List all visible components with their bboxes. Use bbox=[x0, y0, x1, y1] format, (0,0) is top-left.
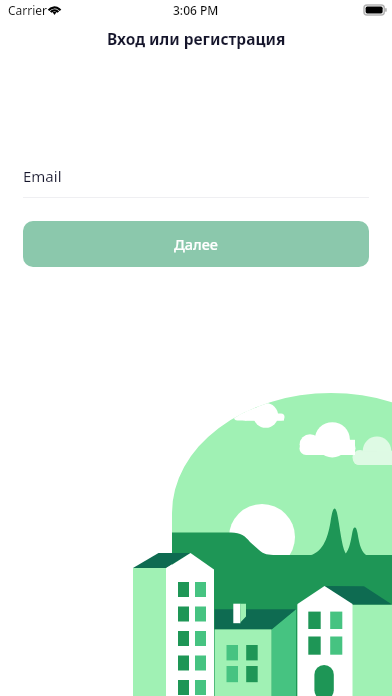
staticText: 3:06 PM bbox=[173, 2, 219, 18]
staticText: Email bbox=[23, 166, 62, 186]
staticText: Вход или регистрация bbox=[107, 28, 286, 49]
staticText: Далее bbox=[174, 234, 218, 254]
staticText: Carrier bbox=[8, 2, 48, 18]
button[interactable]: Далее bbox=[23, 221, 369, 267]
